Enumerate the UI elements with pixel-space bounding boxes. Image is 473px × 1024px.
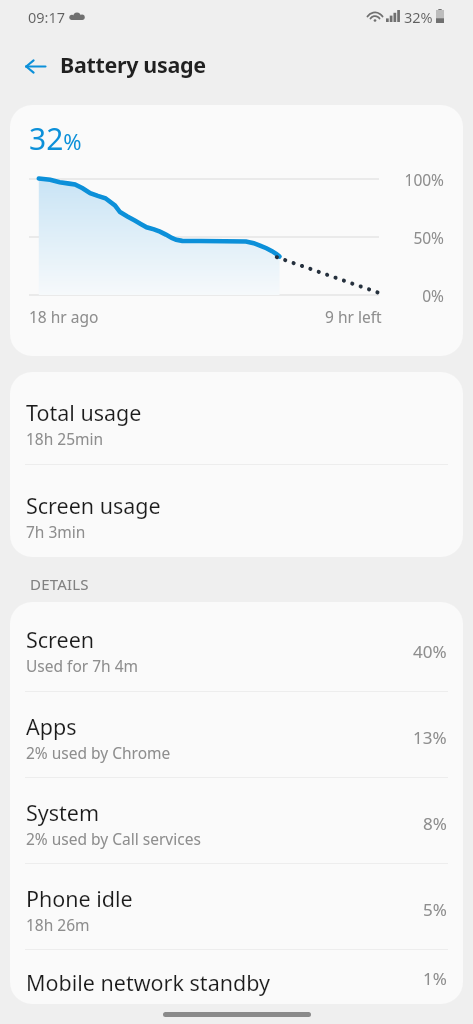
staticText: 09:17 [28, 7, 66, 27]
staticText: 50% [344, 227, 444, 248]
staticText: 18 hr ago [29, 306, 99, 327]
staticText: 1% [423, 967, 447, 990]
staticText: Mobile network standby [26, 968, 270, 997]
staticText: DETAILS [30, 574, 89, 594]
staticText: Phone idle [26, 884, 133, 913]
button[interactable]: Total usage [10, 372, 463, 464]
button[interactable]: Screen [10, 606, 463, 691]
staticText: 40% [413, 640, 447, 663]
staticText: 5% [423, 898, 447, 921]
staticText: 32% [404, 7, 433, 27]
staticText: 2% used by Call services [26, 828, 201, 849]
button[interactable]: Screen usage [10, 465, 463, 557]
staticText: Screen usage [26, 491, 161, 520]
button[interactable]: System [10, 778, 463, 863]
staticText: 18h 25min [26, 428, 104, 449]
staticText: 13% [413, 726, 447, 749]
staticText: 0% [344, 285, 444, 306]
staticText: 18h 26m [26, 914, 90, 935]
staticText: 32% [29, 118, 82, 159]
staticText: 7h 3min [26, 521, 86, 542]
staticText: System [26, 798, 100, 827]
staticText: Used for 7h 4m [26, 655, 139, 676]
button[interactable]: Mobile network standby [10, 950, 463, 1004]
staticText: 8% [423, 812, 447, 835]
button[interactable]: Phone idle [10, 864, 463, 949]
staticText: Total usage [26, 398, 142, 427]
button[interactable]: Apps [10, 692, 463, 777]
staticText: Battery usage [60, 50, 206, 79]
staticText: 9 hr left [325, 306, 382, 327]
staticText: Screen [26, 625, 95, 654]
staticText: 2% used by Chrome [26, 742, 171, 763]
staticText: Apps [26, 712, 77, 741]
staticText: 100% [344, 169, 444, 190]
button[interactable]: Back [14, 45, 56, 87]
